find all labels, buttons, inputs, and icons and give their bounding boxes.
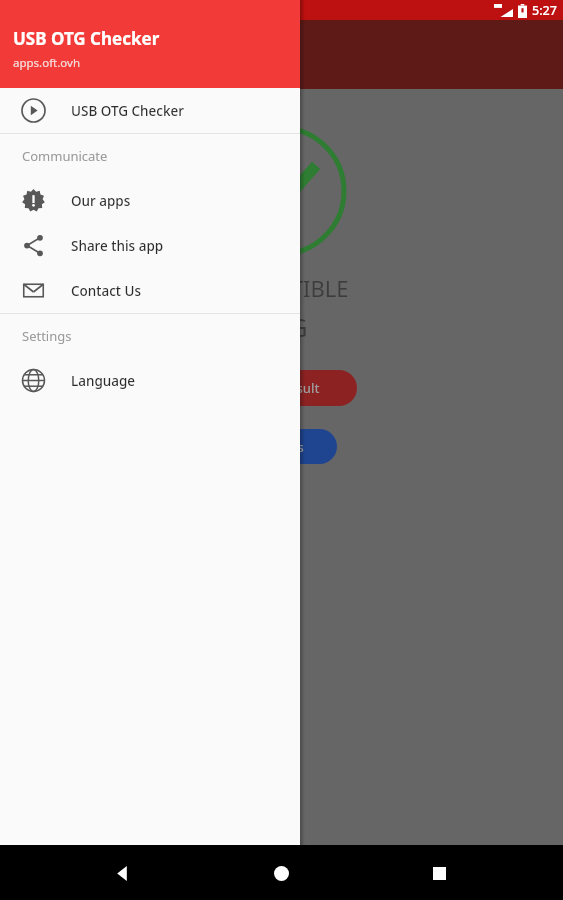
staticText: USB OTG Checker	[13, 27, 160, 50]
staticText: Our apps	[71, 192, 131, 210]
staticText: Share this app	[71, 237, 164, 255]
button[interactable]: Recent apps	[415, 849, 463, 897]
staticText: USB OTG Checker	[71, 102, 184, 120]
staticText: apps.oft.ovh	[13, 55, 81, 71]
button[interactable]: Share result	[207, 370, 357, 406]
button[interactable]: Contact Us	[0, 268, 300, 313]
staticText: Settings	[22, 327, 72, 345]
button[interactable]: Home	[257, 849, 305, 897]
button[interactable]: Our apps	[0, 178, 300, 223]
staticText: 5:27	[532, 2, 557, 19]
button[interactable]: Details	[227, 429, 337, 464]
staticText: Language	[71, 372, 136, 390]
button[interactable]: USB OTG Checker	[0, 0, 300, 88]
staticText: Details	[261, 438, 304, 456]
button[interactable]: Language	[0, 358, 300, 403]
button[interactable]: Back	[99, 849, 147, 897]
button[interactable]: Share this app	[0, 223, 300, 268]
staticText: Contact Us	[71, 282, 142, 300]
staticText: OTG	[255, 309, 308, 344]
staticText: Communicate	[22, 147, 108, 165]
staticText: COMPATIBLE	[215, 273, 349, 303]
staticText: Share result	[245, 379, 320, 397]
button[interactable]: USB OTG Checker	[0, 88, 300, 133]
